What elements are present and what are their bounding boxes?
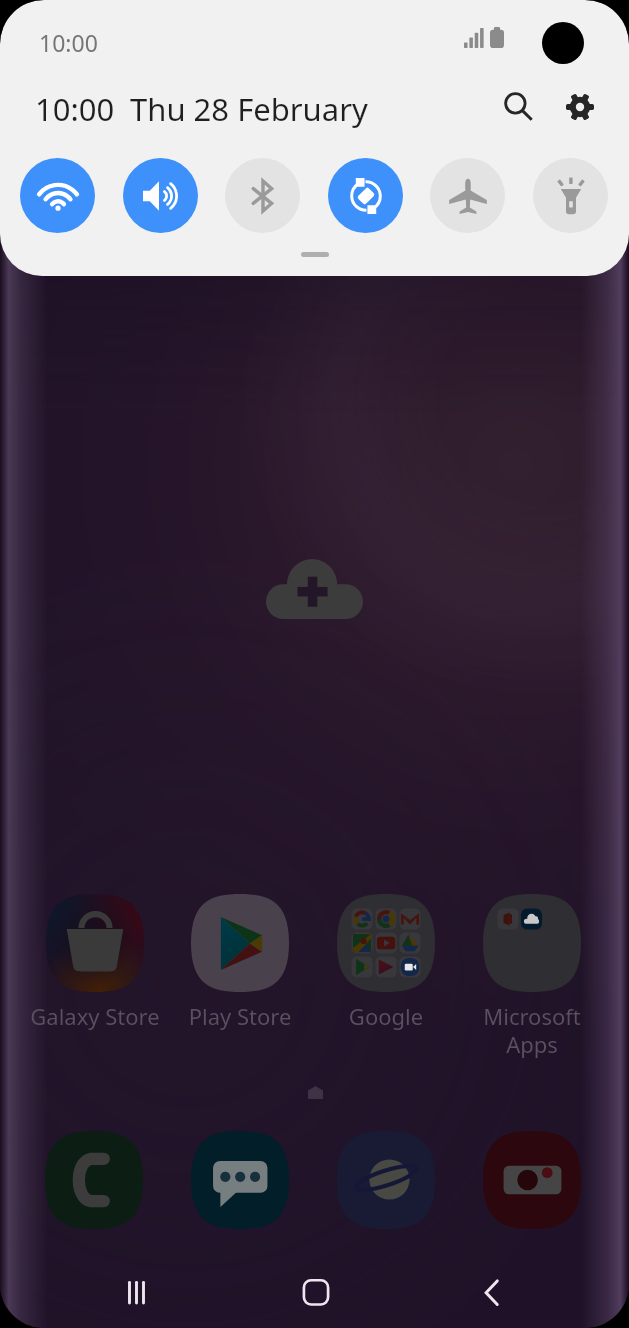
button[interactable]: Camera xyxy=(483,1131,581,1229)
staticText: 10:00 xyxy=(39,27,98,58)
staticText: 10:00 xyxy=(35,88,115,130)
button[interactable]: Auto rotate xyxy=(328,158,403,233)
staticText: Google xyxy=(306,1001,466,1031)
button[interactable]: Back xyxy=(461,1262,523,1324)
staticText: Play Store xyxy=(160,1001,320,1031)
button[interactable]: Google xyxy=(306,894,466,1044)
button[interactable]: Sound xyxy=(123,158,198,233)
button[interactable]: Airplane mode xyxy=(430,158,505,233)
button[interactable]: Phone xyxy=(45,1131,143,1229)
staticText: Galaxy Store xyxy=(15,1001,175,1031)
button[interactable]: Internet xyxy=(337,1131,435,1229)
staticText: Microsoft Apps xyxy=(452,1001,612,1059)
button[interactable]: Flashlight xyxy=(533,158,608,233)
staticText: Thu 28 February xyxy=(130,88,368,130)
button[interactable]: Search xyxy=(493,81,544,132)
button[interactable]: Wi-Fi xyxy=(20,158,95,233)
button[interactable]: Galaxy Store xyxy=(15,894,175,1044)
button[interactable]: Microsoft Apps xyxy=(452,894,612,1044)
button[interactable]: Messages xyxy=(191,1131,289,1229)
button[interactable]: Play Store xyxy=(160,894,320,1044)
button[interactable]: Bluetooth xyxy=(225,158,300,233)
button[interactable]: Recents xyxy=(108,1262,170,1324)
button[interactable]: Add weather widget xyxy=(266,559,363,619)
button[interactable]: Settings xyxy=(554,81,605,132)
button[interactable]: Home xyxy=(285,1262,347,1324)
